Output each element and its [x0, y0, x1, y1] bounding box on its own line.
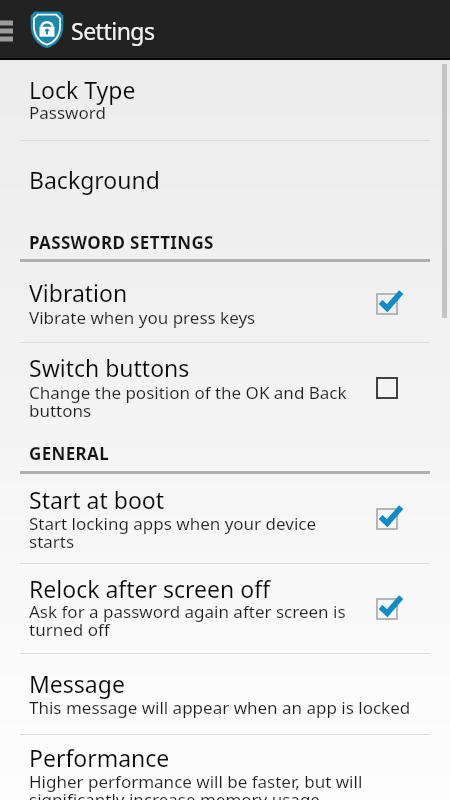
staticText: Performance: [29, 742, 170, 773]
staticText: Password: [29, 101, 421, 123]
button[interactable]: Switch buttons: [0, 343, 450, 429]
staticText: Higher performance will be faster, but w…: [29, 770, 421, 800]
staticText: Start locking apps when your device star…: [29, 512, 364, 552]
button[interactable]: Toggle: [376, 593, 408, 625]
staticText: Vibration: [29, 277, 128, 308]
button[interactable]: Menu: [0, 0, 22, 60]
staticText: Ask for a password again after screen is…: [29, 600, 364, 640]
staticText: Lock Type: [29, 74, 136, 105]
staticText: Switch buttons: [29, 352, 190, 383]
button[interactable]: Start at boot: [0, 474, 450, 563]
button[interactable]: Toggle: [376, 503, 408, 535]
staticText: Vibrate when you press keys: [29, 306, 364, 328]
staticText: Settings: [71, 15, 155, 46]
button[interactable]: Message: [0, 654, 450, 734]
staticText: This message will appear when an app is …: [29, 696, 421, 718]
staticText: Change the position of the OK and Back b…: [29, 381, 364, 421]
button[interactable]: Toggle: [376, 288, 408, 320]
button[interactable]: Relock after screen off: [0, 564, 450, 653]
staticText: Relock after screen off: [29, 573, 270, 604]
button[interactable]: Performance: [0, 735, 450, 800]
button[interactable]: Lock Type: [0, 60, 450, 140]
staticText: Background: [29, 164, 160, 195]
button[interactable]: Vibration: [0, 262, 450, 342]
button[interactable]: Toggle: [376, 372, 408, 404]
staticText: Message: [29, 668, 125, 699]
staticText: PASSWORD SETTINGS: [29, 231, 214, 254]
button[interactable]: Background: [0, 141, 450, 213]
staticText: Start at boot: [29, 484, 165, 515]
staticText: GENERAL: [29, 442, 110, 465]
